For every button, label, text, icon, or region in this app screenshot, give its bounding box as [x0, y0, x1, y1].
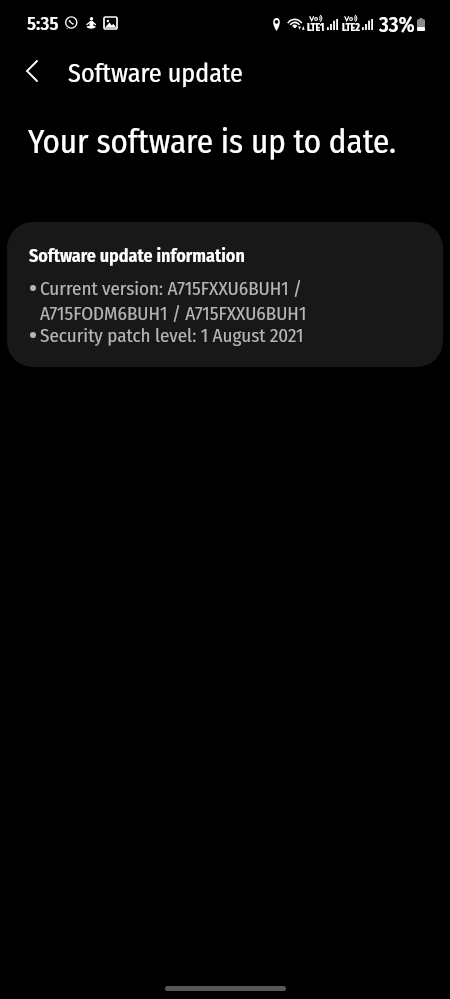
staticText: LTE2 [342, 22, 360, 34]
staticText: Software update [68, 59, 243, 89]
staticText: LTE1 [307, 22, 325, 34]
button[interactable]: Navigate up [14, 53, 50, 89]
staticText: Your software is up to date. [28, 122, 396, 162]
staticText: Software update information [29, 245, 245, 267]
staticText: 5:35 [27, 12, 59, 35]
staticText: 33% [379, 12, 415, 37]
staticText: Current version: A715FXXU6BUH1 / A715FOD… [40, 276, 307, 326]
staticText: Security patch level: 1 August 2021 [40, 323, 304, 348]
button[interactable]: Software update information [7, 222, 443, 367]
